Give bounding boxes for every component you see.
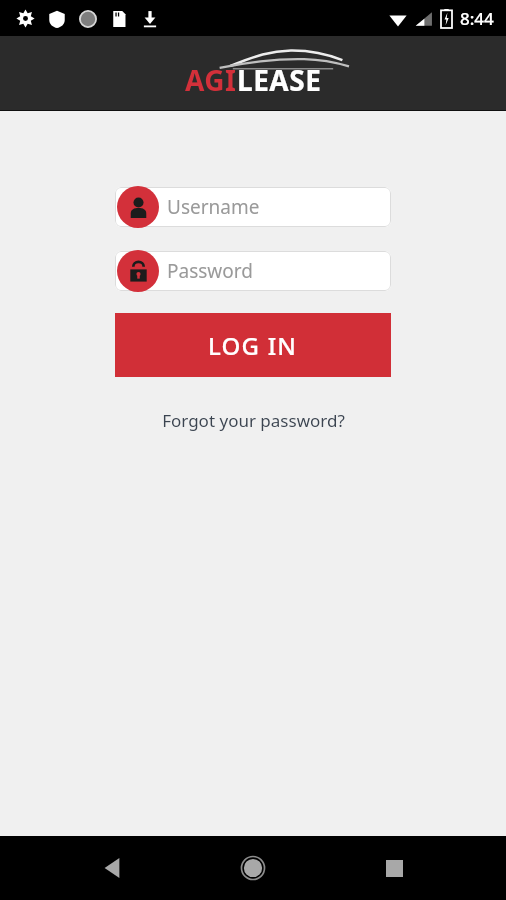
- staticText: AGI: [185, 61, 237, 99]
- button[interactable]: Back: [85, 840, 141, 896]
- button[interactable]: Home: [225, 840, 281, 896]
- staticText: Username: [167, 194, 260, 220]
- button[interactable]: Forgot your password?: [150, 403, 357, 438]
- staticText: 8:44: [460, 7, 494, 30]
- button[interactable]: Password: [115, 251, 391, 291]
- button[interactable]: LOG IN: [115, 313, 391, 377]
- button[interactable]: Password: [117, 250, 159, 292]
- staticText: LOG IN: [208, 329, 298, 362]
- staticText: Password: [167, 258, 253, 284]
- staticText: LEASE: [237, 61, 322, 99]
- button[interactable]: Username: [115, 187, 391, 227]
- button[interactable]: Recent apps: [366, 840, 422, 896]
- staticText: Forgot your password?: [162, 409, 345, 432]
- button[interactable]: Username: [117, 186, 159, 228]
